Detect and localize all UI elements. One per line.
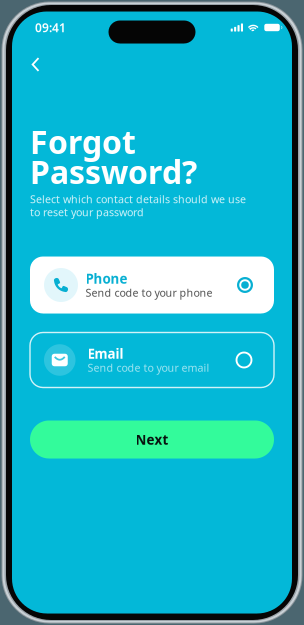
button[interactable]: Phone: [30, 256, 274, 313]
button[interactable]: Next: [30, 420, 274, 458]
staticText: Select which contact details should we u…: [30, 192, 246, 206]
staticText: Send code to your email: [87, 360, 209, 375]
staticText: Send code to your phone: [85, 285, 212, 300]
staticText: 09:41: [35, 19, 66, 35]
staticText: Password?: [30, 150, 197, 193]
staticText: Next: [135, 431, 168, 448]
staticText: Email: [87, 345, 123, 362]
button[interactable]: Email: [30, 332, 274, 387]
staticText: Forgot: [30, 120, 136, 163]
button[interactable]: Back: [20, 49, 50, 79]
staticText: to reset your password: [30, 205, 144, 219]
staticText: Phone: [85, 270, 127, 287]
